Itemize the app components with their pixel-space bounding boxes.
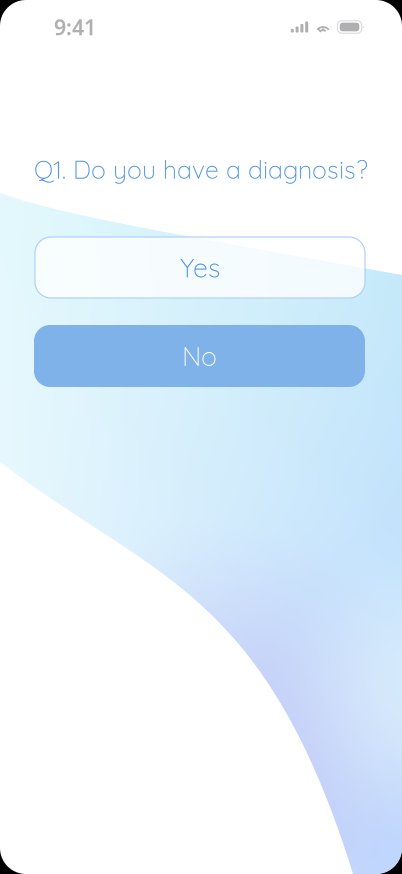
staticText: 9:41 <box>54 13 96 41</box>
staticText: Yes <box>180 251 220 284</box>
staticText: Q1. Do you have a diagnosis? <box>34 154 368 185</box>
staticText: No <box>182 339 217 373</box>
button[interactable]: No <box>34 325 365 387</box>
button[interactable]: Yes <box>35 237 365 298</box>
